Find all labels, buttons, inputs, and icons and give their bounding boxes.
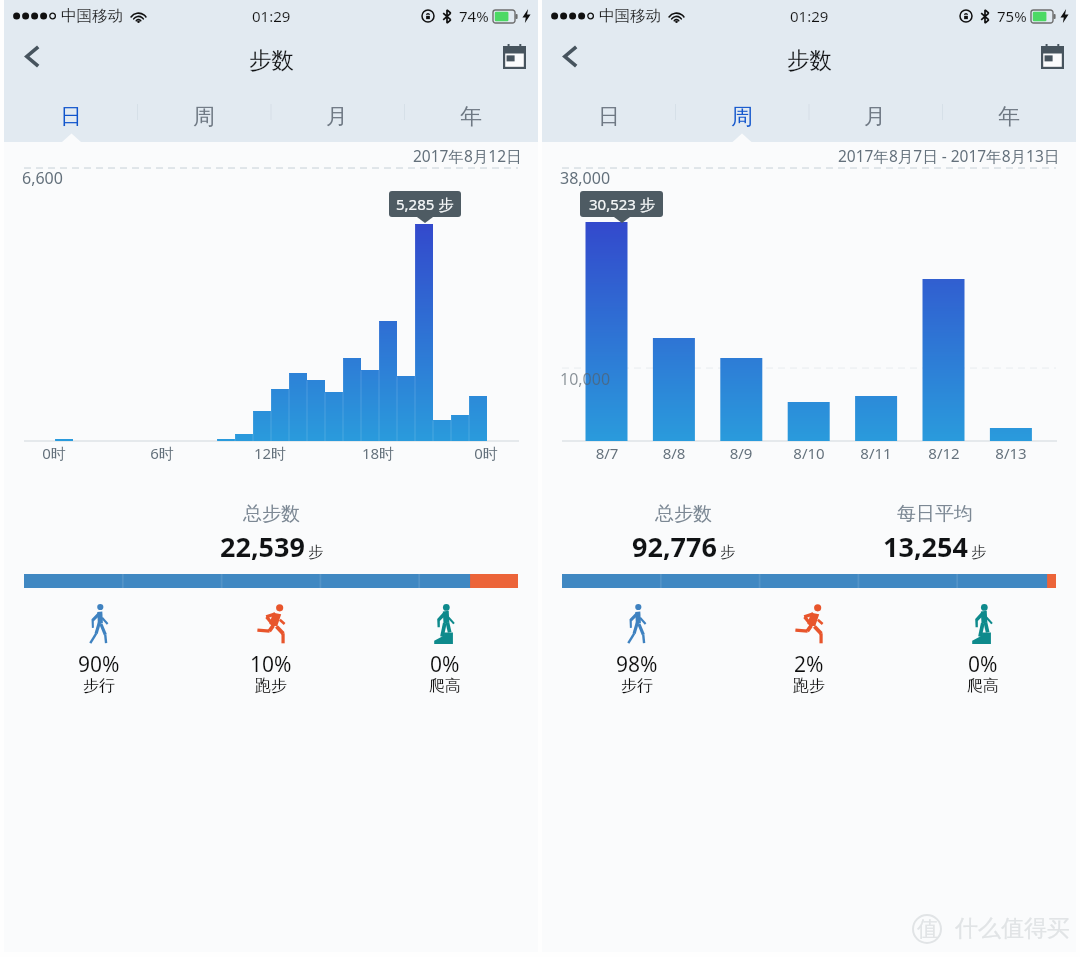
staticText: 2%: [794, 650, 824, 679]
staticText: 2017年8月12日: [413, 145, 522, 166]
button[interactable]: 2%: [764, 603, 854, 699]
staticText: 日: [598, 103, 620, 131]
staticText: 90%: [78, 650, 120, 679]
staticText: 值: [917, 916, 938, 942]
button[interactable]: 周: [137, 88, 270, 142]
staticText: 6,600: [22, 167, 63, 189]
staticText: 75%: [997, 6, 1027, 26]
button[interactable]: 90%: [54, 603, 144, 699]
staticText: 跑步: [793, 676, 825, 696]
staticText: 步行: [621, 676, 653, 696]
staticText: 周: [193, 103, 215, 131]
button[interactable]: 10%: [226, 603, 316, 699]
button[interactable]: 98%: [592, 603, 682, 699]
staticText: 8/10: [775, 443, 843, 463]
staticText: 中国移动: [61, 6, 123, 26]
staticText: 步: [308, 543, 323, 562]
button[interactable]: 0%: [938, 603, 1028, 699]
button[interactable]: Back: [4, 25, 64, 88]
staticText: 爬高: [429, 676, 461, 696]
staticText: 8/9: [707, 443, 775, 463]
staticText: 6时: [128, 443, 196, 463]
staticText: 8/12: [910, 443, 978, 463]
staticText: 12时: [236, 443, 304, 463]
staticText: 步数: [249, 46, 294, 74]
staticText: 10,000: [560, 368, 611, 390]
staticText: 跑步: [255, 676, 287, 696]
staticText: 步数: [787, 46, 832, 74]
staticText: 0%: [430, 650, 460, 679]
staticText: 年: [460, 103, 482, 131]
staticText: 总步数: [655, 502, 712, 526]
staticText: 18时: [344, 443, 412, 463]
staticText: 22,539: [220, 528, 305, 565]
button[interactable]: 周: [675, 88, 808, 142]
button[interactable]: 0%: [400, 603, 490, 699]
staticText: 01:29: [790, 6, 829, 26]
staticText: 总步数: [243, 502, 300, 526]
staticText: 什么值得买: [955, 914, 1070, 943]
staticText: 38,000: [560, 167, 611, 189]
staticText: 01:29: [252, 6, 291, 26]
button[interactable]: Back: [542, 25, 602, 88]
button[interactable]: 月: [808, 88, 942, 142]
staticText: 30,523 步: [589, 194, 655, 214]
staticText: 13,254: [883, 528, 968, 565]
staticText: 月: [864, 103, 886, 131]
button[interactable]: 日: [4, 88, 137, 142]
staticText: 年: [998, 103, 1020, 131]
staticText: 步行: [83, 676, 115, 696]
staticText: 步: [720, 543, 735, 562]
button[interactable]: 日: [542, 88, 675, 142]
button[interactable]: Calendar: [1016, 25, 1076, 88]
staticText: 步: [971, 543, 986, 562]
staticText: 0时: [20, 443, 88, 463]
staticText: 8/8: [640, 443, 708, 463]
staticText: 8/7: [573, 443, 641, 463]
staticText: 日: [60, 103, 82, 131]
staticText: 74%: [459, 6, 489, 26]
staticText: 周: [731, 103, 753, 131]
staticText: 月: [326, 103, 348, 131]
staticText: 92,776: [632, 528, 717, 565]
button[interactable]: 年: [404, 88, 538, 142]
button[interactable]: 年: [942, 88, 1076, 142]
staticText: 98%: [616, 650, 658, 679]
staticText: 5,285 步: [396, 194, 454, 214]
staticText: 爬高: [967, 676, 999, 696]
staticText: 10%: [250, 650, 292, 679]
staticText: 中国移动: [599, 6, 661, 26]
staticText: 2017年8月7日 - 2017年8月13日: [838, 145, 1060, 166]
staticText: 8/11: [842, 443, 910, 463]
button[interactable]: Calendar: [478, 25, 538, 88]
staticText: 8/13: [977, 443, 1045, 463]
staticText: 0时: [452, 443, 520, 463]
button[interactable]: 月: [270, 88, 404, 142]
staticText: 每日平均: [897, 502, 973, 526]
staticText: 0%: [968, 650, 998, 679]
